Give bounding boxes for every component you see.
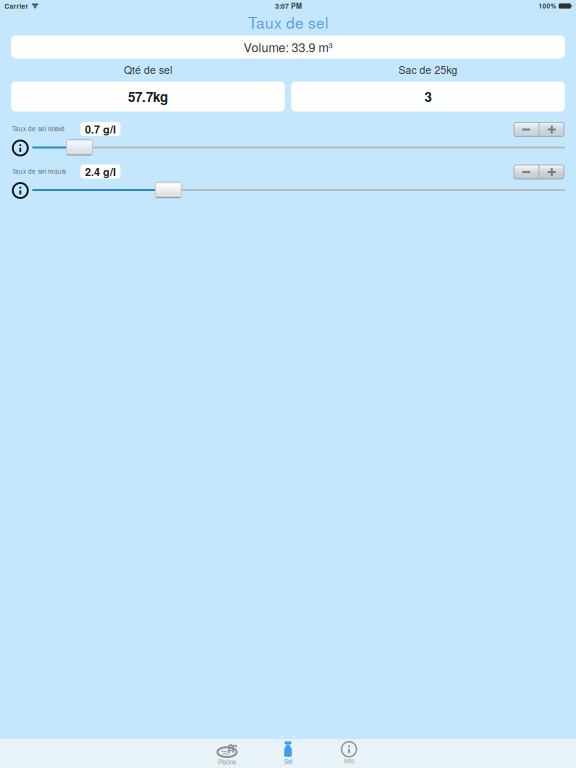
- staticText: Info: [344, 757, 354, 765]
- staticText: 0.7 g/l: [85, 121, 116, 137]
- button[interactable]: Adjust value: [514, 122, 564, 136]
- staticText: Volume: 33.9 m³: [243, 38, 332, 56]
- button[interactable]: Sel: [257, 739, 318, 768]
- staticText: 57.7kg: [128, 87, 168, 106]
- button[interactable]: Info: [13, 183, 28, 198]
- staticText: 2.4 g/l: [85, 164, 116, 179]
- staticText: Sac de 25kg: [398, 62, 457, 77]
- staticText: 3: [424, 87, 431, 106]
- staticText: 3:07 PM: [275, 1, 302, 11]
- staticText: Sel: [284, 757, 292, 766]
- staticText: Carrier: [4, 1, 28, 11]
- staticText: Taux de sel: [248, 11, 328, 33]
- button[interactable]: Adjust value: [514, 165, 564, 179]
- button[interactable]: Info: [13, 140, 28, 155]
- button[interactable]: Info: [318, 739, 379, 768]
- staticText: Taux de sel requis: [12, 166, 66, 175]
- staticText: Qté de sel: [124, 62, 172, 77]
- staticText: 100%: [538, 1, 556, 11]
- staticText: Taux de sel relevé: [12, 124, 65, 133]
- staticText: Piscine: [218, 758, 236, 766]
- button[interactable]: Piscine: [196, 739, 257, 768]
